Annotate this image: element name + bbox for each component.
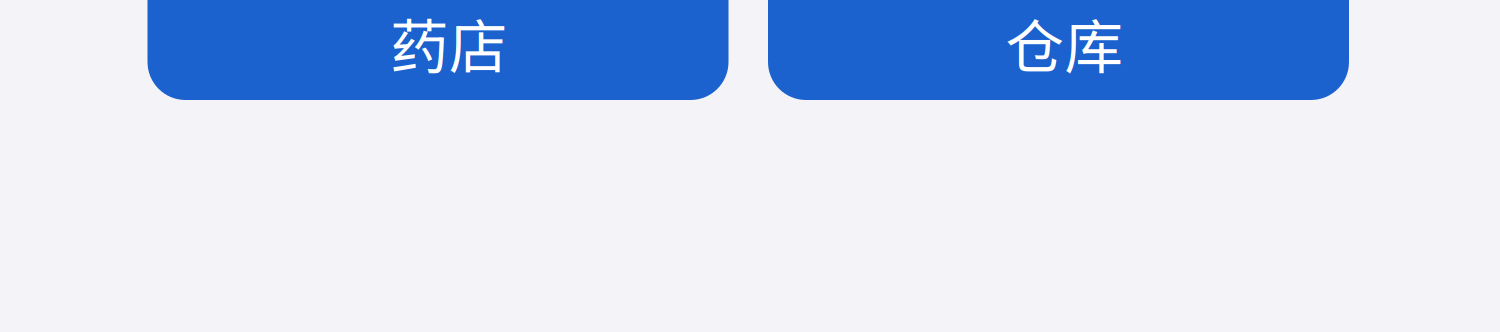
staticText: 仓库 <box>1005 11 1123 80</box>
button[interactable]: 仓库 <box>768 0 1349 100</box>
button[interactable]: 药店 <box>147 0 728 100</box>
staticText: 药店 <box>390 11 508 80</box>
